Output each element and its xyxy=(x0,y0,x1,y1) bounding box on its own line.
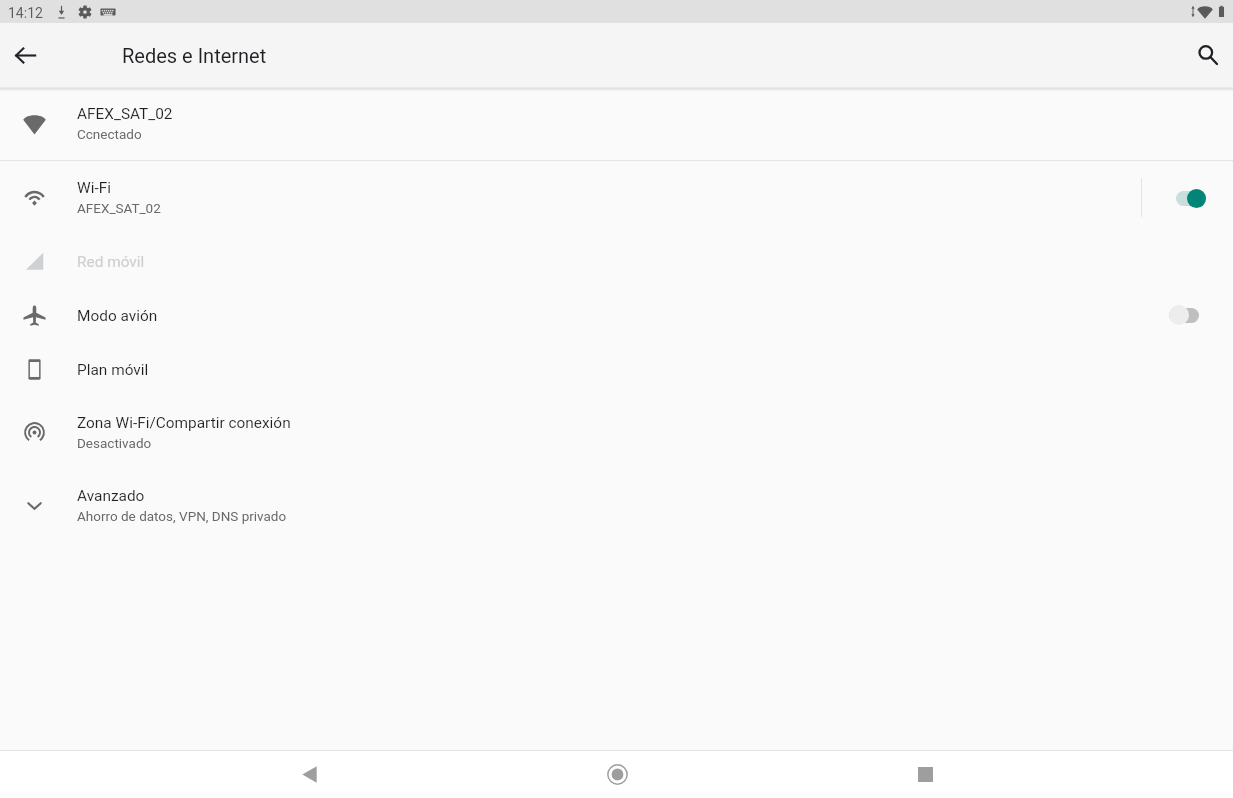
button[interactable]: Home xyxy=(463,751,771,798)
button[interactable]: AFEX_SAT_02 xyxy=(0,87,1233,160)
button[interactable]: Plan móvil xyxy=(0,342,1233,396)
staticText: Zona Wi-Fi/Compartir conexión xyxy=(77,414,291,432)
button[interactable]: Recents xyxy=(771,751,1079,798)
staticText: Plan móvil xyxy=(77,361,149,379)
staticText: Redes e Internet xyxy=(122,44,267,67)
button[interactable]: Red móvil xyxy=(0,234,1233,288)
staticText: Avanzado xyxy=(77,487,145,505)
staticText: Ccnectado xyxy=(77,126,142,142)
staticText: AFEX_SAT_02 xyxy=(77,200,161,216)
staticText: Ahorro de datos, VPN, DNS privado xyxy=(77,508,287,524)
button[interactable]: Search xyxy=(1188,35,1228,75)
button[interactable]: Back xyxy=(5,35,45,75)
staticText: Wi-Fi xyxy=(77,179,111,197)
button[interactable]: Wi-Fi on xyxy=(1172,187,1206,209)
staticText: AFEX_SAT_02 xyxy=(77,105,173,123)
button[interactable]: Zona Wi-Fi/Compartir conexión xyxy=(0,396,1233,469)
button[interactable]: Avanzado xyxy=(0,469,1233,542)
button[interactable]: Wi-Fi xyxy=(0,161,1233,234)
button[interactable]: Airplane mode off xyxy=(1172,304,1206,326)
staticText: Modo avión xyxy=(77,307,158,325)
button[interactable]: Back xyxy=(155,751,463,798)
button[interactable]: Modo avión xyxy=(0,288,1233,342)
staticText: Desactivado xyxy=(77,435,152,451)
staticText: 14:12 xyxy=(8,5,43,21)
staticText: Red móvil xyxy=(77,253,145,271)
